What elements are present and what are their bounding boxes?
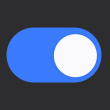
button[interactable]: Toggle — [6, 27, 101, 82]
